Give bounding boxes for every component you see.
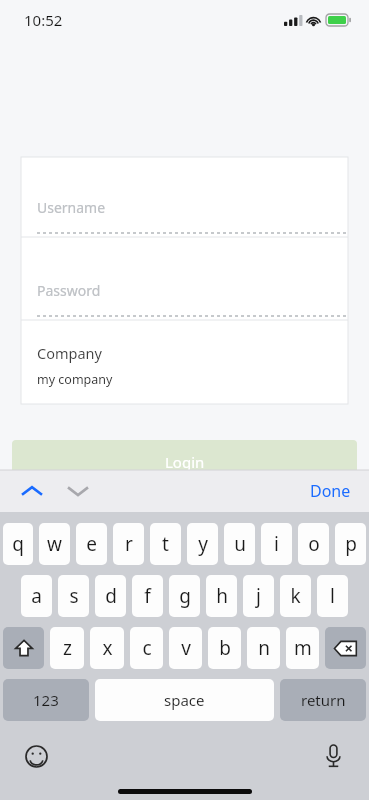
button[interactable]: Previous field [12, 471, 52, 511]
button[interactable]: Company [21, 321, 348, 404]
button[interactable]: w [39, 523, 70, 565]
staticText: e [86, 531, 97, 557]
staticText: a [31, 583, 42, 609]
staticText: 123 [33, 690, 59, 710]
staticText: d [105, 583, 117, 609]
button[interactable]: l [317, 575, 348, 617]
button[interactable]: r [113, 523, 144, 565]
button[interactable]: d [95, 575, 126, 617]
staticText: Password [37, 281, 101, 300]
button[interactable]: Dictation [315, 738, 351, 774]
button[interactable]: f [132, 575, 163, 617]
button[interactable]: u [224, 523, 255, 565]
staticText: 10:52 [24, 10, 63, 30]
button[interactable]: z [50, 627, 84, 669]
staticText: b [219, 635, 231, 661]
staticText: my company [37, 371, 113, 388]
staticText: Login [165, 452, 205, 472]
button[interactable]: a [21, 575, 52, 617]
button[interactable]: b [208, 627, 241, 669]
button[interactable]: y [187, 523, 218, 565]
staticText: y [198, 531, 208, 557]
button[interactable]: Password [21, 238, 348, 320]
staticText: Company [37, 343, 102, 363]
button[interactable]: 123 [3, 679, 89, 721]
staticText: j [256, 583, 261, 609]
staticText: Username [37, 198, 106, 217]
staticText: g [179, 583, 191, 609]
button[interactable]: t [150, 523, 181, 565]
button[interactable]: o [298, 523, 329, 565]
staticText: w [47, 531, 62, 557]
staticText: i [274, 531, 279, 557]
button[interactable]: m [286, 627, 319, 669]
button[interactable]: j [243, 575, 274, 617]
staticText: return [301, 690, 346, 710]
staticText: o [308, 531, 320, 557]
button[interactable]: Done [302, 474, 359, 508]
staticText: q [12, 531, 24, 557]
staticText: Done [310, 480, 351, 502]
staticText: space [164, 690, 205, 710]
button[interactable]: p [335, 523, 366, 565]
button[interactable]: h [206, 575, 237, 617]
button[interactable]: i [261, 523, 292, 565]
button[interactable]: x [90, 627, 124, 669]
staticText: m [294, 635, 312, 661]
staticText: k [290, 583, 301, 609]
button[interactable]: Username [21, 157, 348, 237]
button[interactable]: Backspace [325, 627, 366, 669]
staticText: t [162, 531, 169, 557]
button[interactable]: return [280, 679, 366, 721]
button[interactable]: c [130, 627, 163, 669]
staticText: n [258, 635, 270, 661]
staticText: x [102, 635, 113, 661]
button[interactable]: Login [12, 440, 357, 484]
button[interactable]: k [280, 575, 311, 617]
button[interactable]: q [3, 523, 33, 565]
staticText: p [345, 531, 357, 557]
staticText: f [144, 583, 151, 609]
button[interactable]: space [95, 679, 274, 721]
staticText: s [69, 583, 79, 609]
staticText: r [125, 531, 133, 557]
button[interactable]: Emoji [18, 738, 54, 774]
staticText: v [181, 635, 191, 661]
button[interactable]: n [247, 627, 280, 669]
button[interactable]: Shift [3, 627, 44, 669]
button[interactable]: Next field [58, 471, 98, 511]
staticText: h [216, 583, 228, 609]
button[interactable]: s [58, 575, 89, 617]
staticText: z [63, 635, 72, 661]
staticText: c [142, 635, 152, 661]
button[interactable]: v [169, 627, 202, 669]
button[interactable]: e [76, 523, 107, 565]
staticText: u [234, 531, 246, 557]
button[interactable]: g [169, 575, 200, 617]
staticText: l [330, 583, 335, 609]
